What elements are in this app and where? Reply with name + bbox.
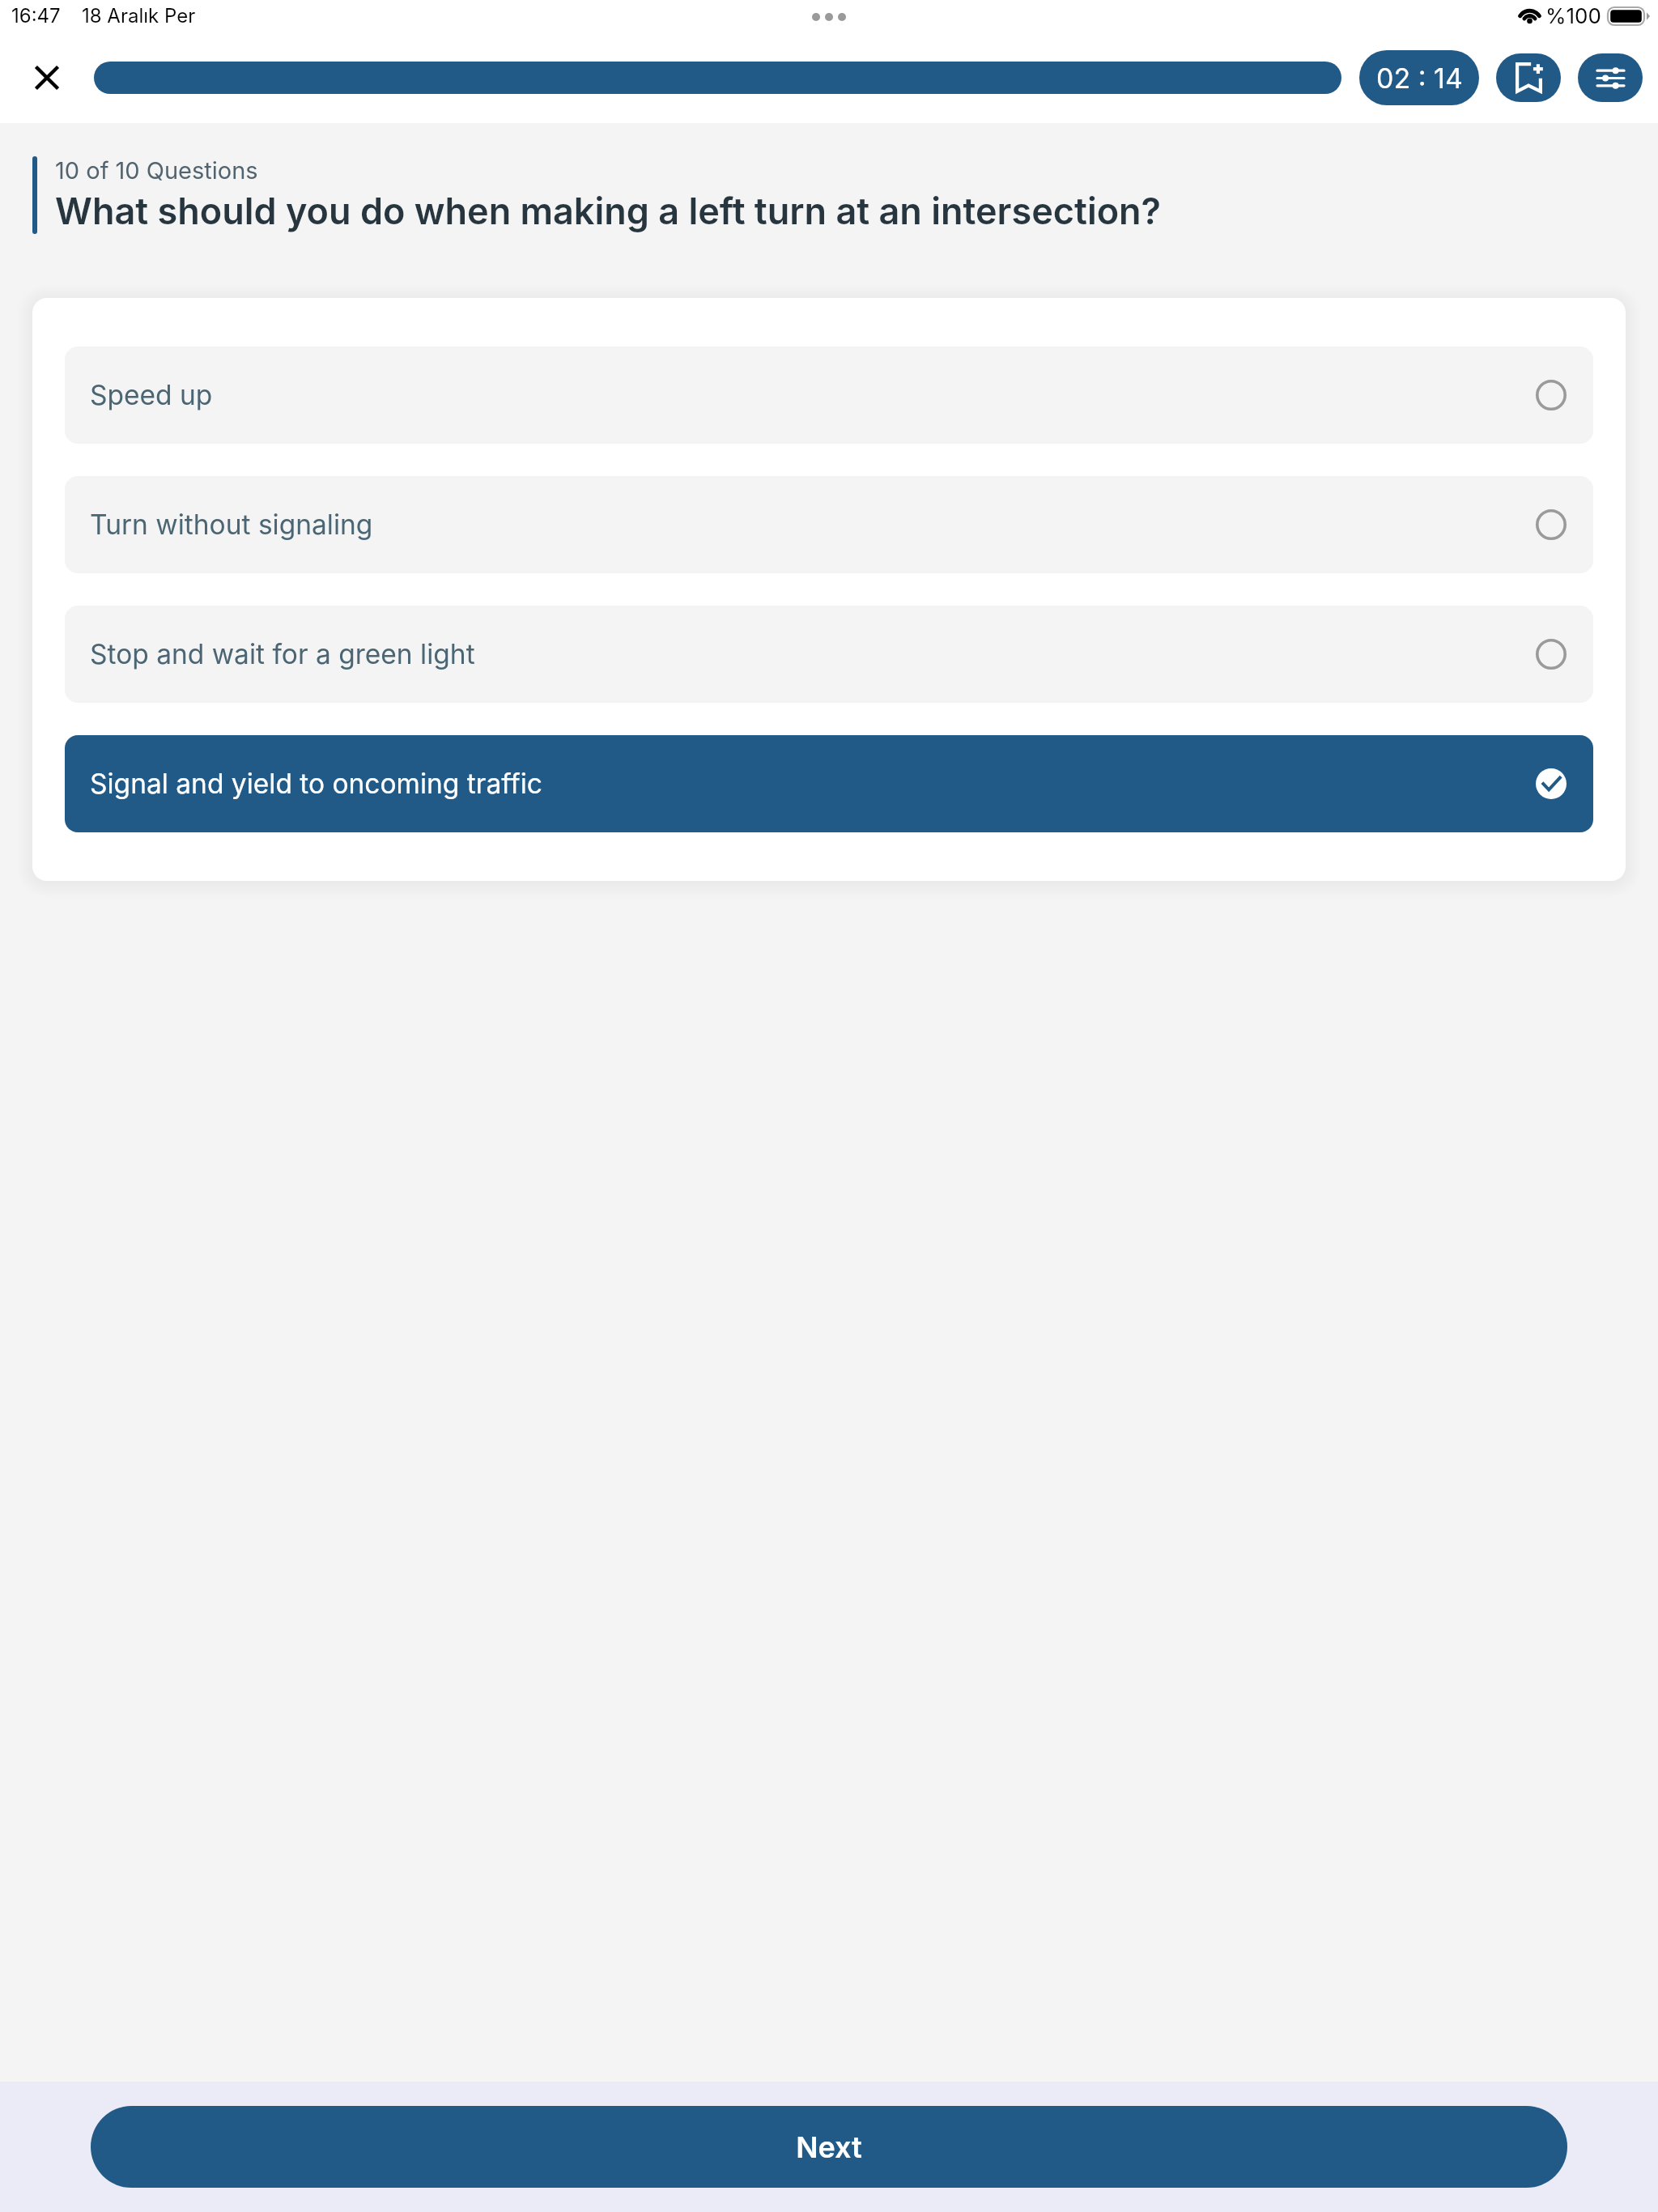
button[interactable]: Speed up bbox=[65, 347, 1593, 444]
button[interactable]: 02 : 14 bbox=[1359, 50, 1479, 105]
staticText: %100 bbox=[1545, 3, 1601, 28]
staticText: Turn without signaling bbox=[90, 508, 373, 542]
button[interactable]: Turn without signaling bbox=[65, 476, 1593, 573]
staticText: 10 of 10 Questions bbox=[55, 156, 258, 185]
staticText: Stop and wait for a green light bbox=[90, 638, 475, 671]
button[interactable]: Signal and yield to oncoming traffic bbox=[65, 735, 1593, 832]
staticText: 18 Aralık Per bbox=[82, 4, 196, 28]
button[interactable]: Bookmark bbox=[1496, 53, 1561, 102]
staticText: Signal and yield to oncoming traffic bbox=[90, 768, 542, 801]
staticText: Next bbox=[796, 2129, 862, 2165]
staticText: 02 : 14 bbox=[1376, 62, 1463, 95]
button[interactable]: Close bbox=[15, 45, 79, 110]
button[interactable]: Next bbox=[91, 2106, 1567, 2188]
button[interactable]: Settings bbox=[1578, 53, 1643, 102]
staticText: 16:47 bbox=[11, 4, 61, 28]
staticText: Speed up bbox=[90, 379, 213, 412]
button[interactable]: Stop and wait for a green light bbox=[65, 606, 1593, 703]
staticText: What should you do when making a left tu… bbox=[55, 189, 1162, 232]
